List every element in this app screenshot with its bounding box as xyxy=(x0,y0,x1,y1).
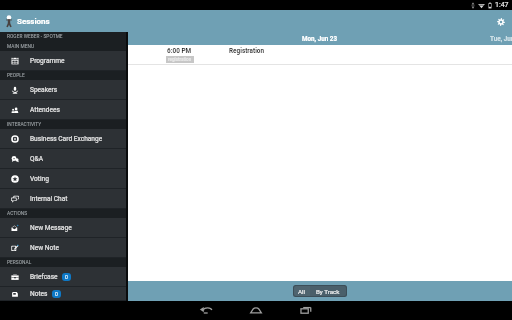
staticText: ACTIONS xyxy=(7,211,28,217)
staticText: 6:00 PM xyxy=(167,47,192,55)
button[interactable]: Attendees xyxy=(0,100,126,120)
button[interactable]: Speakers xyxy=(0,80,126,100)
staticText: registration xyxy=(168,57,192,62)
button[interactable]: Voting xyxy=(0,169,126,189)
button[interactable]: Business Card Exchange xyxy=(0,129,126,149)
staticText: By Track xyxy=(316,288,340,295)
staticText: Mon, Jun 23 xyxy=(302,35,338,42)
button[interactable]: 6:00 PM xyxy=(128,45,512,65)
staticText: New Message xyxy=(30,224,72,232)
button[interactable]: By Track xyxy=(310,286,346,296)
button[interactable]: All xyxy=(294,286,310,296)
staticText: Speakers xyxy=(30,86,58,94)
button[interactable]: Back xyxy=(188,301,224,320)
staticText: Voting xyxy=(30,175,49,183)
staticText: Attendees xyxy=(30,106,60,114)
button[interactable]: New Note xyxy=(0,238,126,258)
staticText: Programme xyxy=(30,57,65,65)
staticText: Business Card Exchange xyxy=(30,135,103,143)
staticText: Internal Chat xyxy=(30,195,68,203)
staticText: 1:47 xyxy=(495,1,509,9)
staticText: Registration xyxy=(229,47,265,55)
staticText: PEOPLE xyxy=(7,73,25,79)
staticText: MAIN MENU xyxy=(7,44,35,50)
staticText: Q&A xyxy=(30,155,43,163)
staticText: ROGER WEBER - SPOTME xyxy=(7,34,63,40)
button[interactable]: Internal Chat xyxy=(0,189,126,209)
button[interactable]: Programme xyxy=(0,51,126,71)
button[interactable]: Notes xyxy=(0,287,126,301)
staticText: INTERACTIVITY xyxy=(7,122,42,128)
button[interactable]: Recents xyxy=(288,301,324,320)
staticText: Tue, Jun 24 xyxy=(490,35,512,42)
staticText: 0 xyxy=(55,291,58,297)
staticText: Notes xyxy=(30,290,48,298)
button[interactable]: Settings xyxy=(494,14,508,28)
staticText: Sessions xyxy=(17,17,50,26)
staticText: All xyxy=(298,288,306,295)
staticText: 0 xyxy=(65,274,68,280)
button[interactable]: Q&A xyxy=(0,149,126,169)
button[interactable]: Briefcase xyxy=(0,267,126,287)
staticText: PERSONAL xyxy=(7,260,32,266)
staticText: Briefcase xyxy=(30,273,58,281)
staticText: New Note xyxy=(30,244,59,252)
button[interactable]: New Message xyxy=(0,218,126,238)
button[interactable]: Home xyxy=(238,301,274,320)
